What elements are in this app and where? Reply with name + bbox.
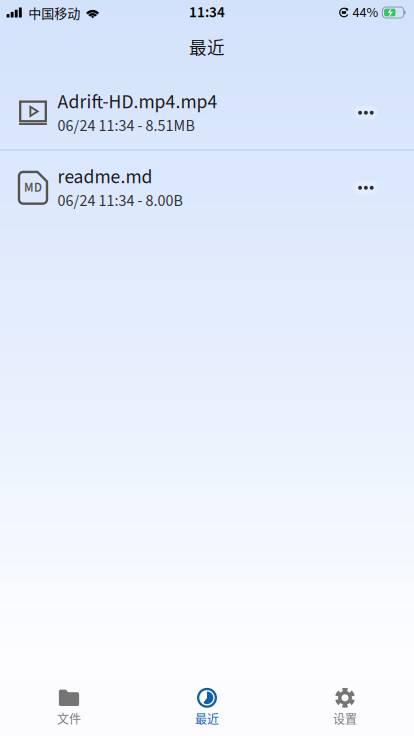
staticText: 最近 [189,33,225,59]
staticText: 设置 [333,710,357,727]
staticText: Adrift-HD.mp4.mp4 [57,88,217,116]
staticText: 44% [352,2,378,22]
button[interactable]: More options [354,181,378,194]
staticText: 中国移动 [28,3,80,22]
staticText: 11:34 [189,2,225,23]
button[interactable]: Adrift-HD.mp4.mp4 [0,76,414,149]
staticText: 06/24 11:34 - 8.00B [57,190,182,212]
button[interactable]: 设置 [276,673,414,736]
staticText: MD [24,179,42,197]
button[interactable]: More options [354,106,378,119]
staticText: 最近 [195,710,219,727]
staticText: readme.md [57,163,152,191]
button[interactable]: MD [0,151,414,225]
staticText: 06/24 11:34 - 8.51MB [57,114,194,137]
button[interactable]: 文件 [0,673,138,736]
staticText: 文件 [57,710,81,727]
button[interactable]: 最近 [138,673,276,736]
